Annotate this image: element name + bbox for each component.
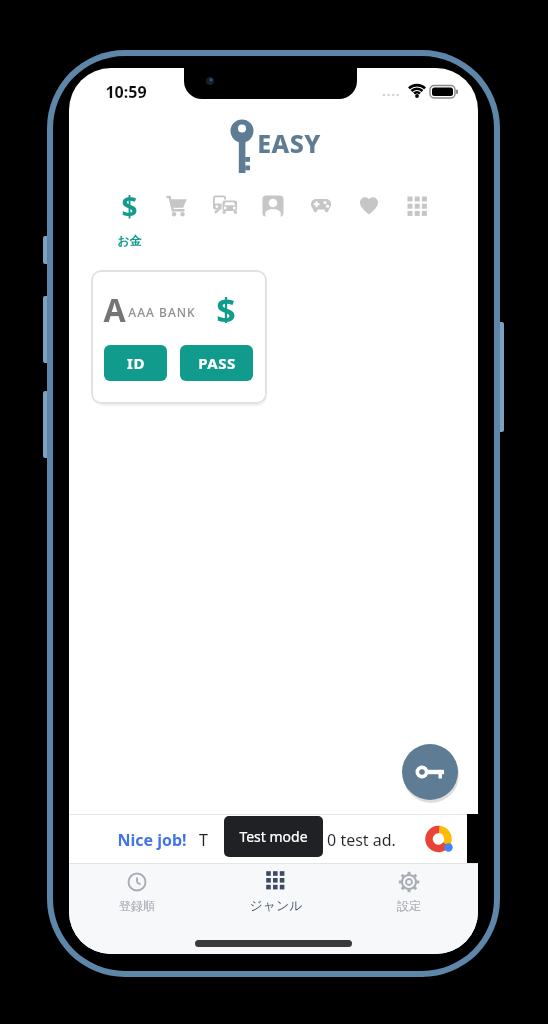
staticText: A [103, 288, 126, 322]
button[interactable] [237, 865, 315, 917]
staticText: T [199, 829, 208, 851]
staticText: $ [216, 287, 236, 323]
button[interactable] [153, 182, 201, 230]
button[interactable]: ID [104, 345, 167, 381]
staticText: EASY [257, 126, 321, 158]
staticText: 登録順 [119, 898, 155, 913]
button[interactable] [201, 182, 249, 230]
button[interactable] [297, 182, 345, 230]
button[interactable] [402, 744, 458, 800]
staticText: Nice job! [117, 829, 187, 851]
button[interactable]: PASS [180, 345, 253, 381]
staticText: ジャンル [249, 897, 303, 913]
button[interactable]: A [91, 270, 267, 404]
button[interactable] [345, 182, 393, 230]
staticText: 10:59 [105, 81, 147, 103]
button[interactable] [393, 182, 441, 230]
staticText: お金 [117, 233, 142, 248]
staticText: 設定 [397, 898, 421, 913]
staticText: PASS [198, 353, 236, 373]
button[interactable] [99, 865, 175, 917]
staticText: ID [127, 353, 145, 373]
staticText: 0 test ad. [327, 829, 396, 851]
staticText: $ [121, 187, 138, 225]
button[interactable]: $ [105, 182, 153, 230]
staticText: Test mode [239, 827, 308, 846]
staticText: AAA BANK [128, 304, 196, 320]
button[interactable] [249, 182, 297, 230]
button[interactable] [371, 865, 447, 917]
